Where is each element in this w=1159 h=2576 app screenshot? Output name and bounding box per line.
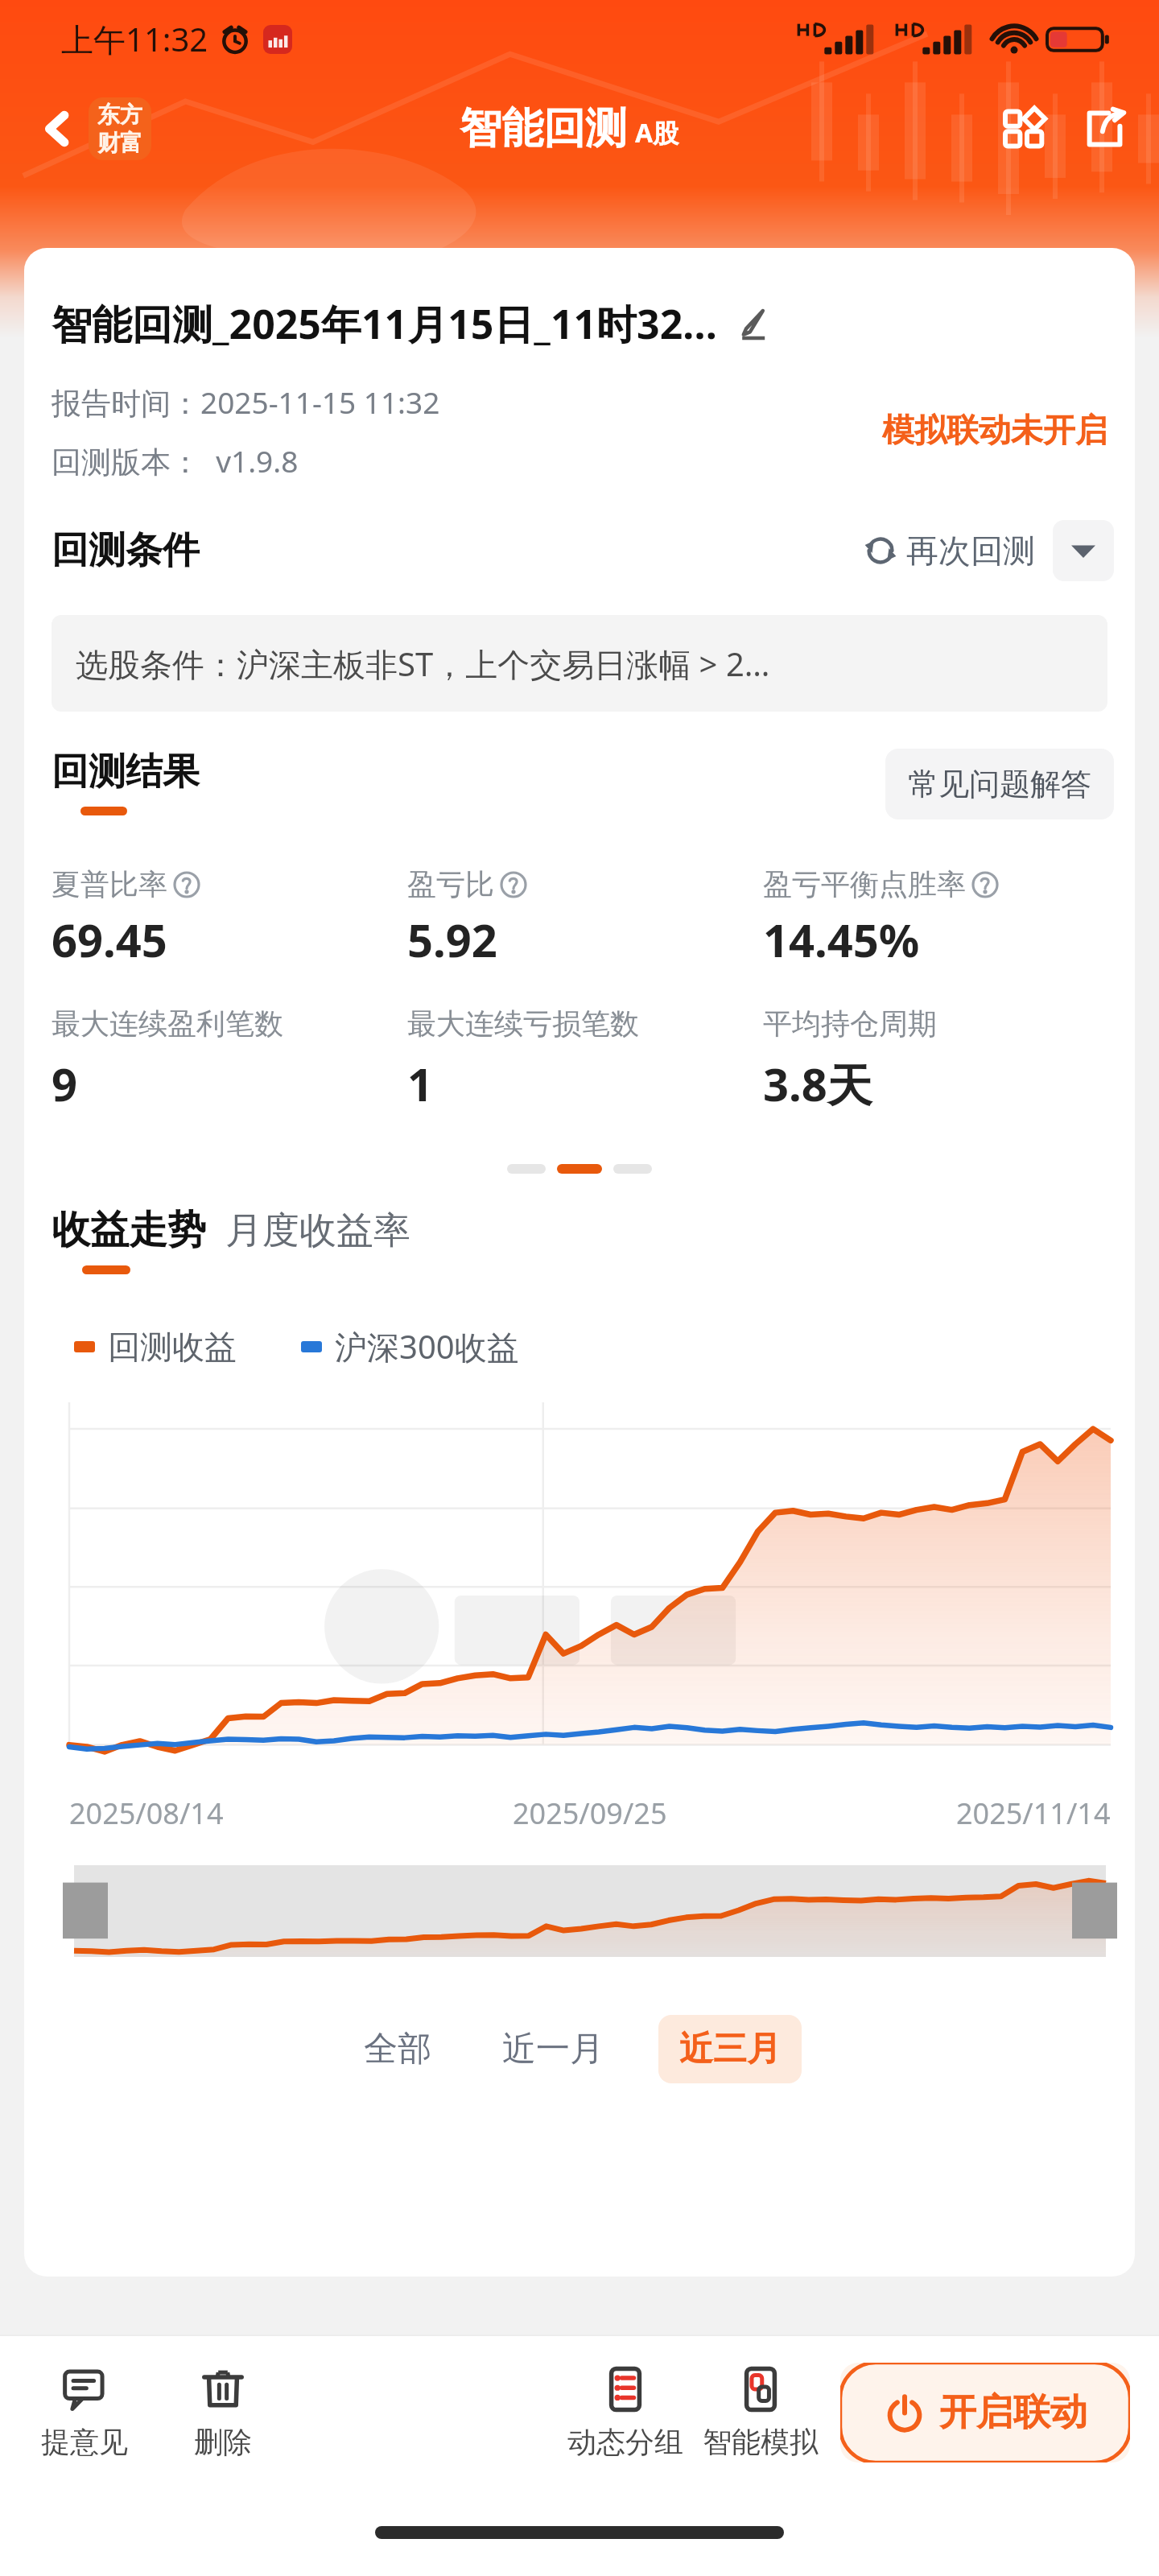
staticText: 平均持仓周期 [763, 1005, 937, 1042]
staticText: 2025/09/25 [513, 1794, 667, 1833]
button[interactable]: Share [1066, 90, 1143, 167]
button[interactable]: 动态分组 [565, 2359, 686, 2467]
button[interactable]: 全部 [357, 2015, 438, 2083]
staticText: 9 [52, 1053, 78, 1114]
staticText: 回测结果 [52, 749, 200, 795]
button[interactable]: Back [27, 98, 89, 159]
staticText: 智能回测 [460, 102, 627, 155]
staticText: 提意见 [41, 2424, 128, 2460]
staticText: 回测版本： v1.9.8 [52, 440, 299, 481]
staticText: 2025/08/14 [69, 1794, 224, 1833]
staticText: 近三月 [679, 2028, 781, 2070]
button[interactable]: 再次回测 [864, 530, 1035, 571]
staticText: 东方 [97, 101, 142, 129]
button[interactable]: 模拟联动未开启 [882, 410, 1107, 453]
button[interactable]: 提意见 [24, 2359, 145, 2467]
button[interactable]: 盈亏比 说明 [499, 870, 528, 899]
staticText: 沪深300收益 [335, 1324, 519, 1368]
staticText: 1 [407, 1053, 434, 1114]
staticText: 上午11:32 [61, 17, 208, 61]
staticText: 近一月 [502, 2028, 604, 2070]
button[interactable]: 删除 [163, 2359, 283, 2467]
button[interactable]: 选股条件：沪深主板非ST，上个交易日涨幅 > 2… [52, 615, 1107, 712]
staticText: 动态分组 [567, 2424, 683, 2460]
staticText: 69.45 [52, 909, 167, 970]
button[interactable]: More apps [988, 90, 1066, 167]
staticText: 14.45% [763, 909, 920, 970]
button[interactable]: 夏普比率 说明 [172, 870, 201, 899]
staticText: 再次回测 [906, 530, 1035, 571]
staticText: 夏普比率 [52, 866, 167, 902]
staticText: 回测条件 [52, 527, 200, 574]
staticText: 盈亏比 [407, 866, 494, 902]
button[interactable]: 智能模拟 [700, 2359, 821, 2467]
button[interactable]: Expand conditions [1053, 520, 1114, 581]
staticText: 2025/11/14 [956, 1794, 1111, 1833]
button[interactable]: 近一月 [496, 2015, 610, 2083]
button[interactable]: 开启联动 [840, 2363, 1130, 2462]
button[interactable]: 近三月 [658, 2015, 802, 2083]
button[interactable]: 收益走势 [52, 1206, 206, 1254]
staticText: 最大连续亏损笔数 [407, 1005, 639, 1042]
button[interactable]: 盈亏平衡点胜率 说明 [971, 870, 1000, 899]
staticText: 模拟联动未开启 [882, 410, 1107, 450]
staticText: 常见问题解答 [908, 765, 1091, 803]
button[interactable]: Edit name [728, 299, 777, 349]
staticText: 3.8天 [763, 1053, 872, 1114]
staticText: 报告时间：2025-11-15 11:32 [52, 382, 440, 423]
staticText: 开启联动 [939, 2389, 1087, 2436]
button[interactable]: 月度收益率 [225, 1207, 410, 1254]
staticText: 删除 [194, 2424, 252, 2460]
staticText: 最大连续盈利笔数 [52, 1005, 283, 1042]
staticText: 智能模拟 [703, 2424, 819, 2460]
staticText: 财富 [97, 129, 142, 157]
staticText: 5.92 [407, 909, 497, 970]
button[interactable]: 东方财富 [89, 97, 151, 160]
staticText: 选股条件：沪深主板非ST，上个交易日涨幅 > 2… [76, 642, 770, 686]
staticText: 智能回测_2025年11月15日_11时32… [52, 296, 718, 351]
staticText: A股 [635, 115, 679, 151]
staticText: 回测收益 [108, 1327, 237, 1367]
staticText: 全部 [364, 2028, 431, 2070]
staticText: 盈亏平衡点胜率 [763, 866, 966, 902]
button[interactable]: 常见问题解答 [885, 749, 1114, 819]
